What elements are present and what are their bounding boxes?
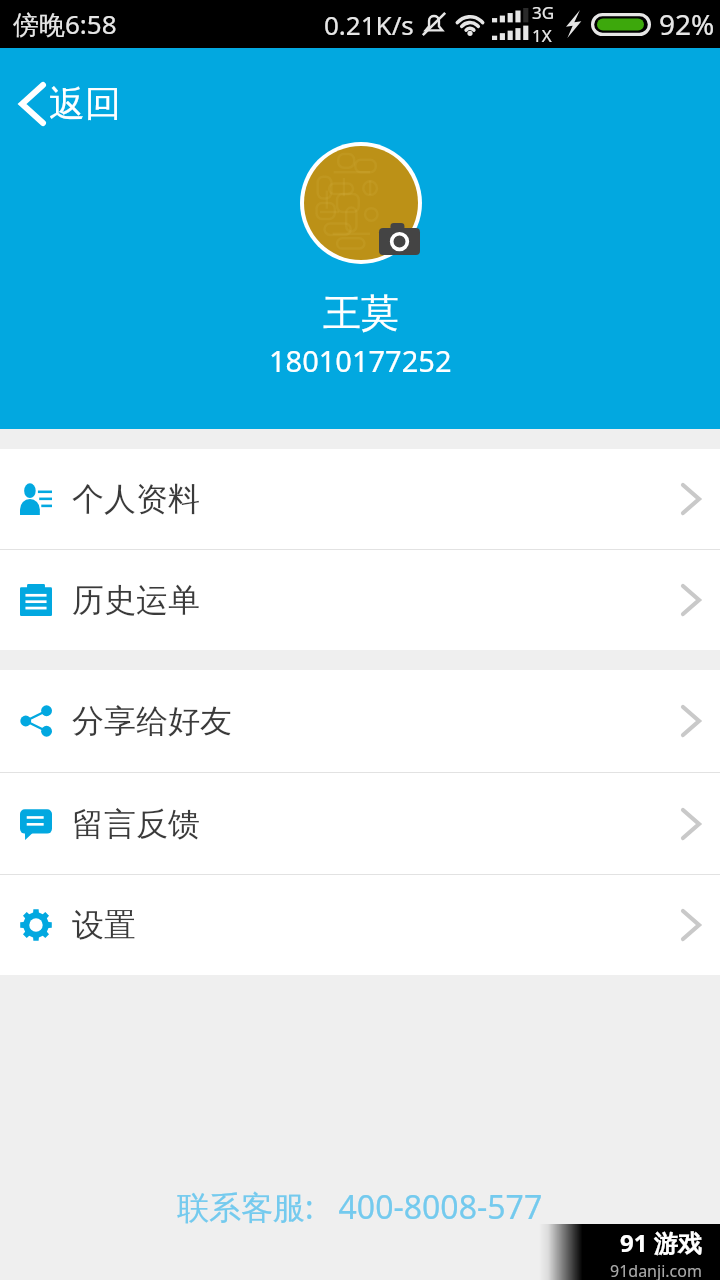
button[interactable]: 分享给好友 bbox=[0, 670, 720, 772]
staticText: 个人资料 bbox=[72, 479, 200, 519]
button[interactable]: 返回 bbox=[12, 75, 127, 132]
staticText: 分享给好友 bbox=[72, 701, 232, 741]
staticText: 1X bbox=[532, 24, 552, 47]
button[interactable]: 留言反馈 bbox=[0, 773, 720, 874]
staticText: 王莫 bbox=[323, 289, 399, 337]
staticText: 92% bbox=[659, 5, 715, 43]
staticText: 18010177252 bbox=[269, 341, 452, 380]
staticText: 留言反馈 bbox=[72, 804, 200, 844]
staticText: 历史运单 bbox=[72, 580, 200, 620]
staticText: 91danji.com bbox=[610, 1260, 702, 1280]
staticText: 91 游戏 bbox=[620, 1226, 702, 1259]
staticText: 3G bbox=[532, 1, 555, 24]
button[interactable]: 历史运单 bbox=[0, 550, 720, 650]
staticText: 设置 bbox=[72, 905, 136, 945]
staticText: 傍晚6:58 bbox=[13, 6, 117, 42]
staticText: 联系客服: 400-8008-577 bbox=[177, 1185, 543, 1229]
button[interactable]: 设置 bbox=[0, 875, 720, 975]
staticText: 返回 bbox=[49, 81, 121, 126]
button[interactable]: 联系客服: 400-8008-577 bbox=[169, 1181, 551, 1233]
staticText: 0.21K/s bbox=[324, 7, 414, 42]
button[interactable]: Change profile photo bbox=[304, 146, 418, 260]
button[interactable]: 个人资料 bbox=[0, 449, 720, 549]
button[interactable]: Take photo bbox=[379, 223, 420, 255]
